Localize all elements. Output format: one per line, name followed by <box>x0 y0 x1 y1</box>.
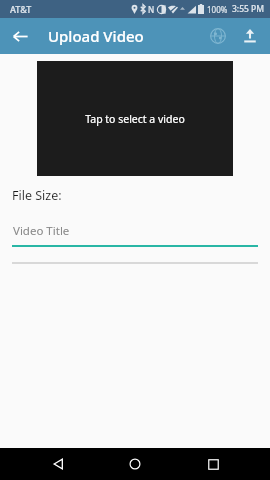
button[interactable]: Back <box>38 448 78 480</box>
button[interactable]: Recent apps <box>193 448 233 480</box>
staticText: AT&T <box>10 3 32 15</box>
button[interactable]: Public visibility <box>204 22 232 50</box>
staticText: 3:55 PM <box>232 3 265 15</box>
staticText: Video Title <box>13 223 70 239</box>
button[interactable]: Video Title <box>12 223 258 247</box>
staticText: Tap to select a video <box>85 112 185 126</box>
button[interactable]: Upload <box>236 22 264 50</box>
button[interactable]: Home <box>115 448 155 480</box>
staticText: 100% <box>207 4 228 15</box>
button[interactable]: Back <box>6 22 34 50</box>
staticText: File Size: <box>12 187 62 204</box>
button[interactable]: Tap to select a video <box>37 61 233 176</box>
staticText: N <box>148 4 155 15</box>
staticText: Upload Video <box>48 26 144 46</box>
